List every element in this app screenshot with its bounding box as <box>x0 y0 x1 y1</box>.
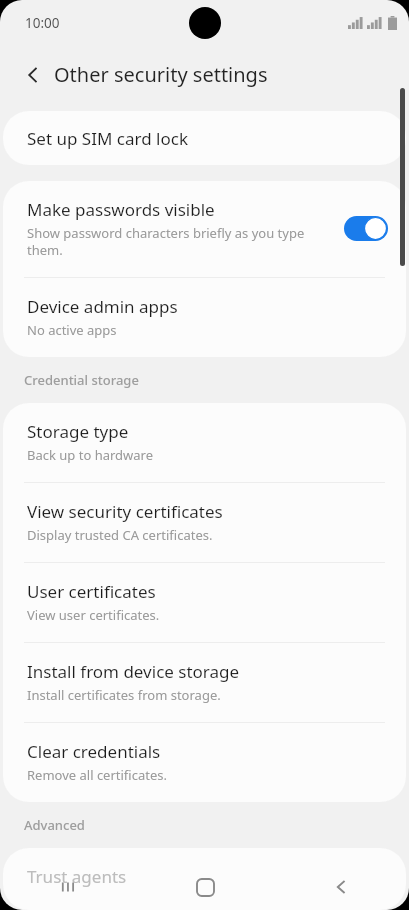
button[interactable]: Make passwords visible <box>3 181 406 277</box>
staticText: Storage type <box>27 420 129 443</box>
staticText: Remove all certificates. <box>27 766 167 784</box>
staticText: Make passwords visible <box>27 198 215 221</box>
button[interactable]: Set up SIM card lock <box>3 111 406 165</box>
button[interactable]: Trust agents <box>3 848 406 910</box>
button[interactable]: View security certificates <box>3 483 406 562</box>
button[interactable]: Back <box>14 56 52 94</box>
button[interactable]: Clear credentials <box>3 723 406 802</box>
staticText: Install from device storage <box>27 660 240 683</box>
staticText: Back up to hardware <box>27 446 154 464</box>
button[interactable]: Device admin apps <box>3 278 406 357</box>
staticText: 10:00 <box>25 14 60 32</box>
staticText: No active apps <box>27 321 117 339</box>
staticText: Display trusted CA certificates. <box>27 526 213 544</box>
staticText: Install certificates from storage. <box>27 686 221 704</box>
staticText: Device admin apps <box>27 295 178 318</box>
staticText: Credential storage <box>24 371 139 389</box>
button[interactable]: Make passwords visible toggle <box>344 216 388 241</box>
button[interactable]: Install from device storage <box>3 643 406 722</box>
button[interactable]: Storage type <box>3 403 406 482</box>
staticText: Set screen lock type to use. <box>27 891 193 892</box>
staticText: Clear credentials <box>27 740 161 763</box>
button[interactable]: Recent apps <box>0 864 137 910</box>
button[interactable]: Back <box>273 864 409 910</box>
staticText: Set up SIM card lock <box>27 127 188 150</box>
staticText: View user certificates. <box>27 606 160 624</box>
staticText: Other security settings <box>54 61 268 88</box>
staticText: Trust agents <box>27 865 127 888</box>
staticText: View security certificates <box>27 500 223 523</box>
staticText: Advanced <box>24 816 85 834</box>
button[interactable]: Home <box>137 864 273 910</box>
button[interactable]: User certificates <box>3 563 406 642</box>
staticText: Show password characters briefly as you … <box>27 224 332 259</box>
staticText: User certificates <box>27 580 156 603</box>
